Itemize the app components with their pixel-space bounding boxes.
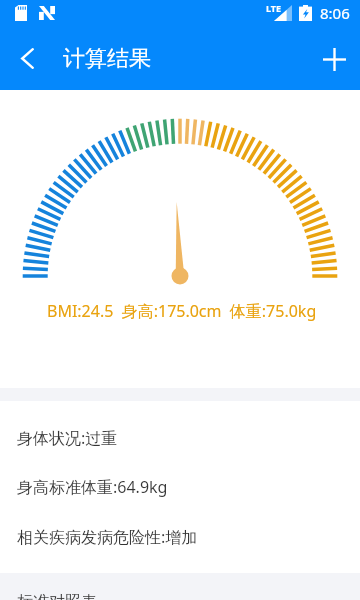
staticText: BMI:24.5 身高:175.0cm 体重:75.0kg	[47, 300, 317, 322]
staticText: 8:06	[320, 3, 350, 23]
staticText: 计算结果	[63, 45, 151, 73]
button[interactable]: Back	[5, 36, 49, 80]
staticText: 标准对照表	[17, 592, 97, 600]
button[interactable]: Add	[312, 37, 356, 81]
staticText: 身体状况:过重	[17, 427, 118, 449]
button[interactable]: 身体状况:过重	[0, 413, 360, 463]
staticText: 身高标准体重:64.9kg	[17, 476, 168, 498]
button[interactable]: 相关疾病发病危险性:增加	[0, 512, 360, 562]
staticText: LTE	[266, 2, 282, 14]
staticText: 相关疾病发病危险性:增加	[17, 526, 198, 548]
button[interactable]: 身高标准体重:64.9kg	[0, 462, 360, 512]
button[interactable]: 标准对照表	[0, 573, 360, 600]
